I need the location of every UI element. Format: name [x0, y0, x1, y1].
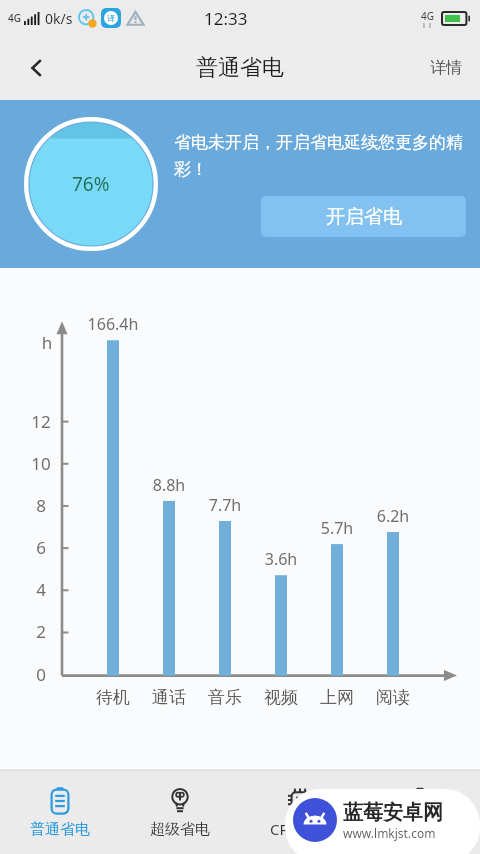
staticText: 5.7h [307, 517, 367, 539]
staticText: 0k/s [45, 9, 73, 28]
staticText: 6 [18, 536, 64, 559]
staticText: 蓝莓安卓网 [343, 800, 443, 825]
button[interactable]: Back [12, 43, 62, 93]
button[interactable]: 省电设置 [360, 770, 480, 854]
button[interactable]: 详情 [412, 36, 480, 100]
staticText: 4 [18, 578, 64, 601]
button[interactable]: CPU省电 [240, 770, 360, 854]
staticText: 开启省电 [326, 205, 402, 229]
staticText: 省电设置 [390, 820, 450, 839]
staticText: 阅读 [363, 687, 423, 708]
staticText: 2 [18, 620, 64, 643]
button[interactable]: 普通省电 [0, 770, 120, 854]
staticText: 8 [18, 494, 64, 517]
staticText: 12 [18, 410, 64, 433]
staticText: 12:33 [204, 7, 248, 30]
staticText: 7.7h [195, 494, 255, 516]
staticText: 166.4h [83, 313, 143, 335]
staticText: 0 [18, 663, 64, 686]
button[interactable]: 超级省电 [120, 770, 240, 854]
staticText: h [30, 331, 64, 354]
staticText: 上网 [307, 687, 367, 708]
staticText: 省电未开启，开启省电延续您更多的精彩！ [174, 132, 466, 180]
button[interactable]: 开启省电 [261, 196, 466, 237]
staticText: 6.2h [363, 505, 423, 527]
staticText: CPU省电 [270, 819, 330, 839]
staticText: 76% [72, 171, 110, 197]
staticText: 4G [421, 9, 434, 23]
staticText: 10 [18, 452, 64, 475]
staticText: 详情 [430, 58, 462, 78]
staticText: 超级省电 [150, 820, 210, 839]
staticText: 普通省电 [30, 820, 90, 839]
staticText: 待机 [83, 687, 143, 708]
staticText: 4G [8, 11, 21, 25]
staticText: 8.8h [139, 474, 199, 496]
staticText: 通话 [139, 687, 199, 708]
staticText: 视频 [251, 687, 311, 708]
staticText: 音乐 [195, 687, 255, 708]
staticText: 译 [107, 13, 115, 23]
staticText: www.lmkjst.com [343, 825, 436, 841]
staticText: 3.6h [251, 548, 311, 570]
staticText: 普通省电 [196, 54, 284, 82]
